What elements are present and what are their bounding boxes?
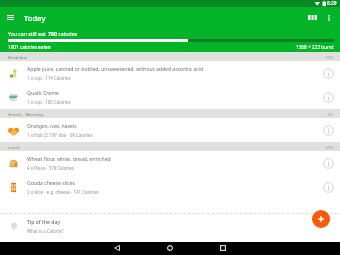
staticText: 1 x fruit (2 7/8" dia) - 69 Calories (27, 132, 93, 138)
button[interactable]: Open navigation drawer (3, 10, 18, 25)
staticText: 1 x cup - 114 Calories (27, 75, 71, 81)
button[interactable]: You can still eat (0, 28, 340, 52)
staticText: calories (57, 30, 78, 37)
staticText: 1001 calories eaten (8, 44, 51, 50)
button[interactable]: Nutrition info (316, 61, 340, 85)
staticText: Lunch (8, 144, 21, 150)
staticText: Wheat flour, white, bread, enriched (27, 156, 111, 163)
button[interactable]: Tip of the day (0, 214, 340, 239)
staticText: Breakfast (8, 54, 28, 60)
button[interactable]: More options (321, 10, 336, 25)
button[interactable]: Snacks - Morning (8, 109, 334, 118)
button[interactable]: Nutrition info (316, 118, 340, 142)
staticText: You can still eat (8, 30, 48, 37)
staticText: 2 x slice - e.g. cheese - 141 Calories (27, 189, 99, 195)
button[interactable]: Quark Creme (0, 85, 340, 109)
staticText: 30% (325, 144, 334, 150)
staticText: Tip of the day (27, 219, 61, 226)
button[interactable]: Nutrition info (316, 175, 340, 199)
button[interactable]: Wheat flour, white, bread, enriched (0, 151, 340, 175)
button[interactable]: Add food entry (312, 210, 330, 228)
staticText: Apple juice, canned or bottled, unsweete… (27, 66, 204, 73)
staticText: 4 x Piece - 578 Calories (27, 165, 74, 171)
button[interactable]: Breakfast (8, 52, 334, 61)
button[interactable]: Apple juice, canned or bottled, unsweete… (0, 61, 340, 85)
button[interactable]: Oranges, raw, navels (0, 118, 340, 142)
button[interactable]: Home (156, 242, 183, 253)
staticText: Quark Creme (27, 90, 59, 97)
button[interactable]: Back (103, 242, 130, 253)
button[interactable]: Recent apps (209, 242, 236, 253)
staticText: Snacks - Morning (8, 111, 43, 117)
staticText: 6:29 (327, 0, 337, 7)
staticText: 1 x cup - 100 Calories (27, 99, 71, 105)
staticText: 3% (327, 111, 334, 117)
button[interactable]: Weekly chart (304, 9, 321, 26)
staticText: Gouda cheese slices (27, 180, 76, 187)
staticText: Today (24, 13, 46, 23)
staticText: 1568 + 223 burnt (296, 44, 334, 50)
button[interactable]: Lunch (8, 142, 334, 151)
staticText: Oranges, raw, navels (27, 123, 77, 130)
staticText: 790 (48, 30, 57, 37)
staticText: What is a Calorie? (27, 228, 64, 234)
button[interactable]: Gouda cheese slices (0, 175, 340, 199)
button[interactable]: Nutrition info (316, 151, 340, 175)
staticText: 10% (325, 54, 334, 60)
button[interactable]: Nutrition info (316, 85, 340, 109)
